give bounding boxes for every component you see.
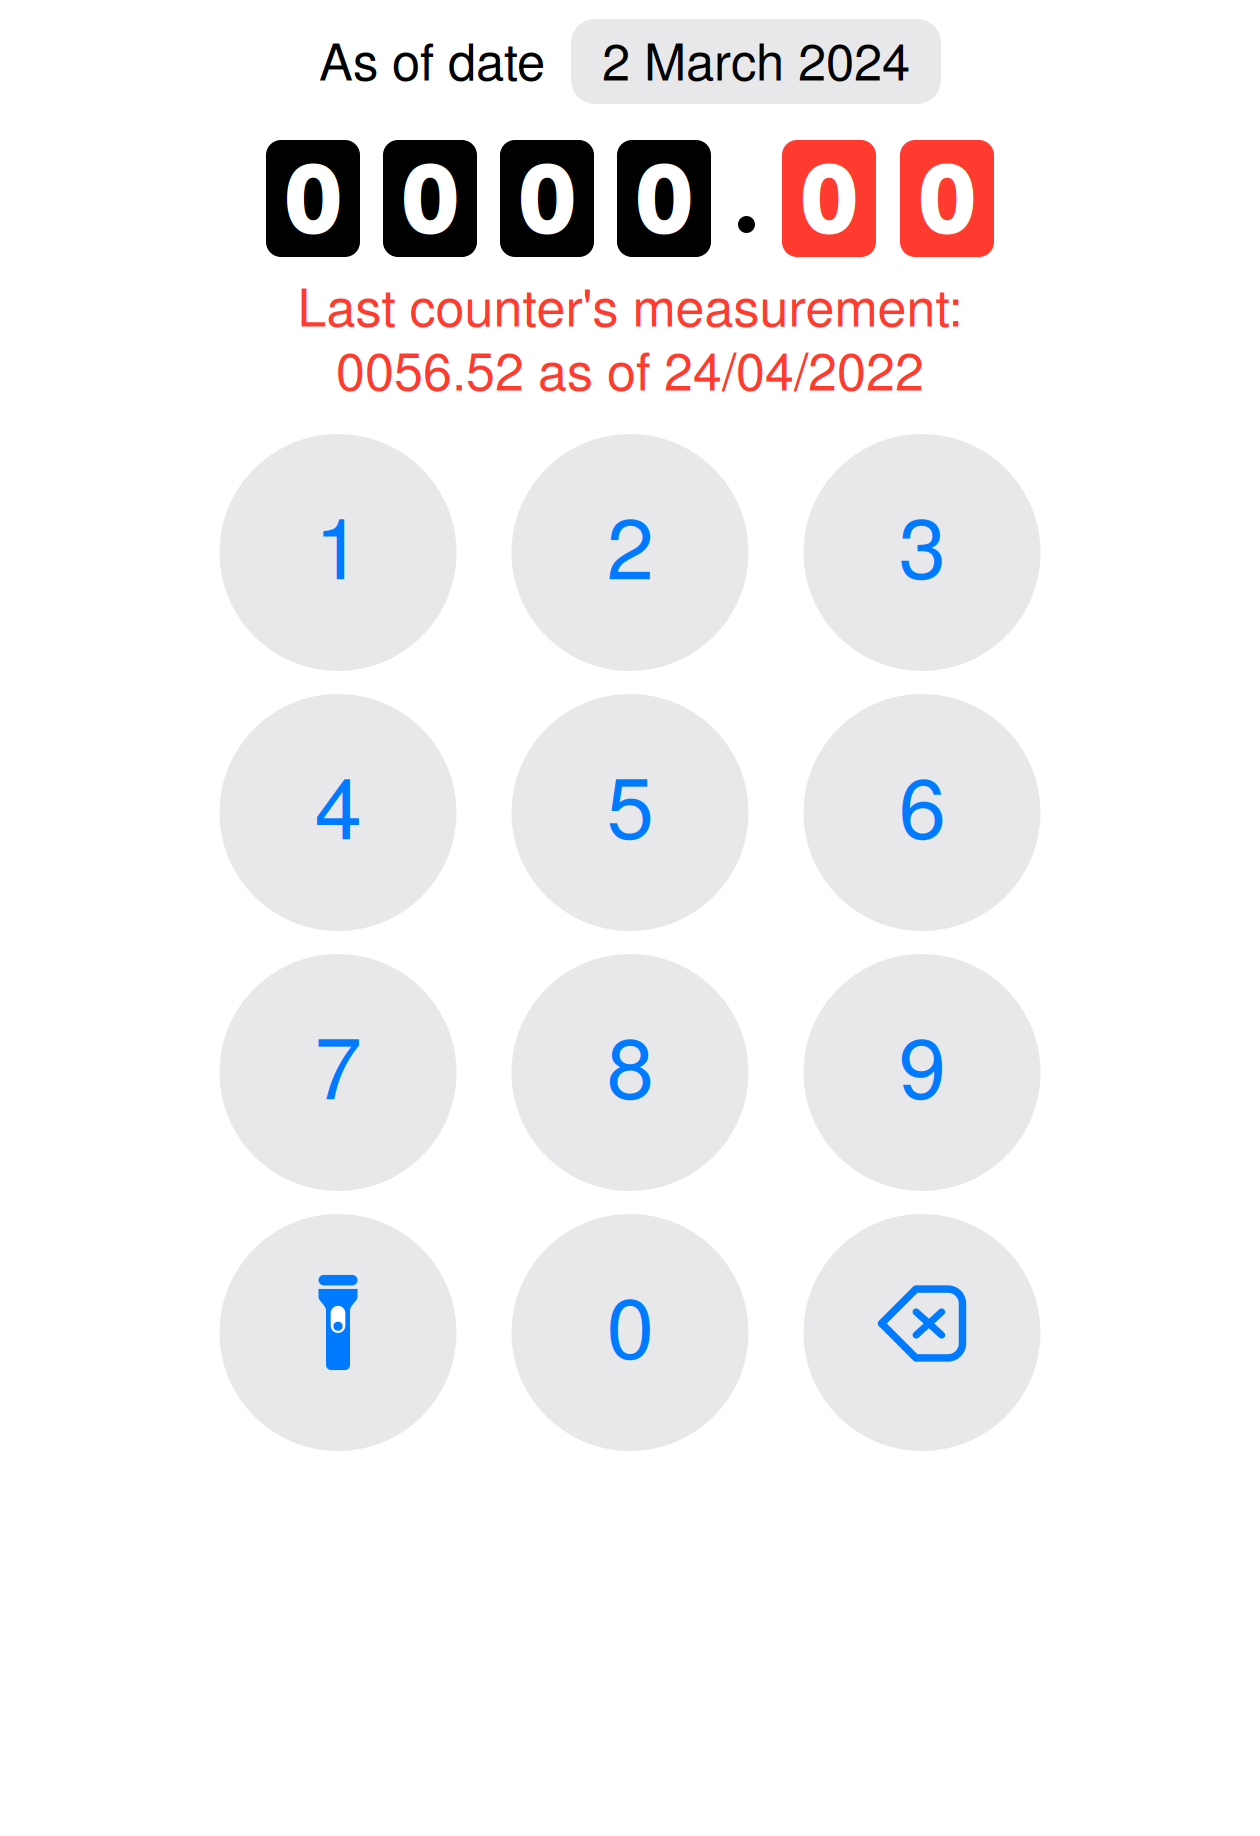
button[interactable]: 3 [803, 434, 1040, 671]
staticText: 9 [898, 1001, 945, 1124]
button[interactable]: 6 [803, 694, 1040, 931]
button[interactable]: 2 [511, 434, 748, 671]
staticText: 4 [314, 741, 361, 864]
button[interactable]: Flashlight [219, 1214, 456, 1451]
staticText: 8 [606, 1001, 653, 1124]
staticText: 1 [314, 481, 361, 604]
staticText: 7 [314, 1001, 361, 1124]
staticText: 2 [606, 481, 653, 604]
staticText: As of date [319, 22, 545, 95]
staticText: 2 March 2024 [602, 22, 910, 95]
button[interactable]: 1 [219, 434, 456, 671]
staticText: 0 [800, 135, 858, 268]
staticText: 5 [606, 741, 653, 864]
staticText: 0 [284, 135, 342, 268]
staticText: 0056.52 as of 24/04/2022 [336, 331, 924, 405]
button[interactable]: 7 [219, 954, 456, 1191]
staticText: 0 [606, 1261, 653, 1384]
staticText: 0 [918, 135, 976, 268]
button[interactable]: 2 March 2024 [571, 19, 941, 104]
button[interactable]: 5 [511, 694, 748, 931]
button[interactable]: 9 [803, 954, 1040, 1191]
button[interactable]: Delete [803, 1214, 1040, 1451]
staticText: 3 [898, 481, 945, 604]
button[interactable]: 4 [219, 694, 456, 931]
staticText: 0 [635, 135, 693, 268]
staticText: Last counter's measurement: [297, 267, 962, 341]
staticText: 0 [518, 135, 576, 268]
button[interactable]: 0 [511, 1214, 748, 1451]
button[interactable]: 8 [511, 954, 748, 1191]
staticText: 6 [898, 741, 945, 864]
staticText: 0 [401, 135, 459, 268]
